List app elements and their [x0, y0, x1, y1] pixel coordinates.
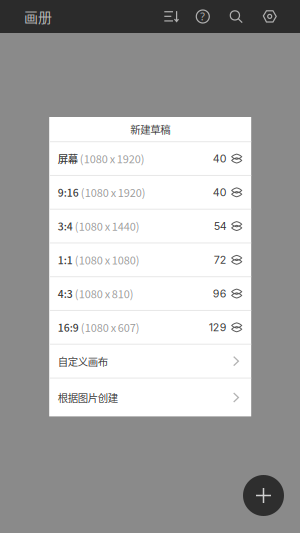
staticText: 40: [213, 152, 227, 165]
button[interactable]: 16:9: [49, 311, 251, 344]
button[interactable]: 屏幕: [49, 142, 251, 175]
staticText: 3:4: [58, 218, 73, 234]
staticText: (1080 x 810): [73, 286, 134, 301]
button[interactable]: 9:16: [49, 176, 251, 209]
button[interactable]: 自定义画布: [49, 345, 251, 378]
button[interactable]: Settings: [254, 0, 286, 33]
staticText: (1080 x 1080): [73, 252, 140, 268]
staticText: (1080 x 607): [79, 319, 140, 335]
staticText: (1080 x 1920): [78, 151, 145, 166]
staticText: (1080 x 1920): [79, 184, 146, 200]
button[interactable]: 1:1: [49, 243, 251, 276]
button[interactable]: 根据图片创建: [49, 379, 251, 416]
button[interactable]: 3:4: [49, 210, 251, 242]
button[interactable]: Help: [187, 0, 219, 33]
staticText: 自定义画布: [58, 354, 108, 369]
staticText: 72: [214, 253, 227, 266]
button[interactable]: 4:3: [49, 277, 251, 310]
staticText: 9:16: [58, 185, 79, 200]
staticText: 新建草稿: [130, 122, 170, 137]
staticText: 4:3: [58, 286, 73, 301]
staticText: 屏幕: [58, 151, 78, 166]
button[interactable]: New drawing: [243, 475, 284, 516]
staticText: 40: [213, 186, 227, 199]
staticText: 96: [213, 287, 227, 300]
staticText: 1:1: [58, 252, 73, 267]
staticText: ?: [200, 9, 205, 23]
staticText: 根据图片创建: [58, 390, 118, 405]
staticText: 画册: [24, 6, 52, 27]
button[interactable]: Sort: [155, 0, 187, 33]
staticText: 54: [214, 220, 227, 232]
staticText: 16:9: [58, 320, 79, 335]
staticText: 129: [209, 321, 227, 334]
staticText: (1080 x 1440): [73, 218, 140, 234]
button[interactable]: Search: [220, 0, 252, 33]
